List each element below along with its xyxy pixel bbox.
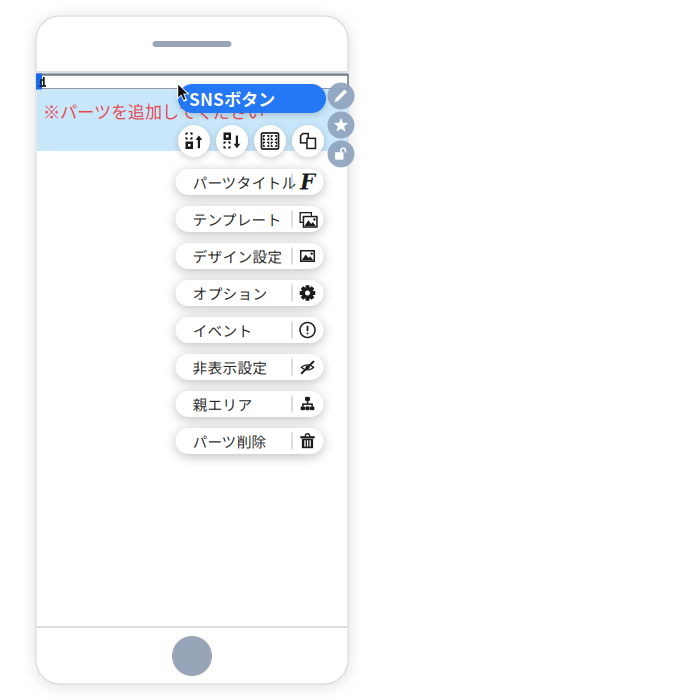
button[interactable]: デザイン設定	[175, 243, 323, 269]
staticText: オプション	[192, 282, 267, 304]
staticText: デザイン設定	[192, 245, 282, 267]
button[interactable]: 非表示設定	[175, 354, 323, 380]
staticText: ※パーツを追加してください	[43, 98, 264, 124]
button[interactable]: Favorite	[327, 111, 354, 138]
button[interactable]: Unlock	[327, 140, 354, 167]
staticText: テンプレート	[192, 208, 281, 230]
button[interactable]: オプション	[175, 280, 323, 306]
staticText: F	[300, 169, 315, 195]
button[interactable]: パーツ削除	[175, 428, 323, 454]
staticText: SNSボタン	[189, 86, 275, 111]
button[interactable]: 親エリア	[175, 391, 323, 417]
staticText: パーツ削除	[192, 430, 266, 452]
button[interactable]: Move up	[178, 125, 210, 157]
staticText: パーツタイトル	[192, 171, 296, 193]
button[interactable]: イベント	[175, 317, 323, 343]
staticText: イベント	[192, 319, 252, 341]
staticText: 親エリア	[192, 393, 252, 415]
button[interactable]: Insert	[254, 125, 286, 157]
button[interactable]: テンプレート	[175, 206, 323, 232]
button[interactable]: パーツタイトル	[175, 169, 323, 195]
staticText: 非表示設定	[192, 356, 267, 378]
button[interactable]: SNSボタン	[178, 84, 326, 113]
button[interactable]: Move down	[216, 125, 248, 157]
button[interactable]: Edit	[327, 82, 354, 109]
button[interactable]: Duplicate	[292, 125, 324, 157]
